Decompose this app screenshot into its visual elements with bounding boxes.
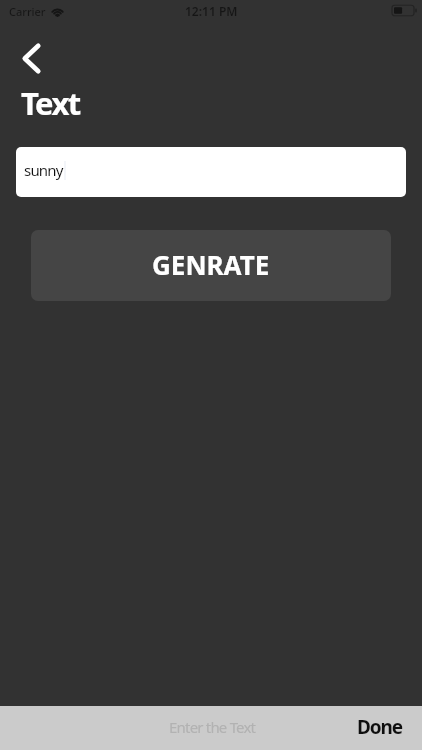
button[interactable]: GENRATE	[31, 230, 391, 301]
button[interactable]: Done	[351, 706, 409, 750]
staticText: Done	[357, 714, 403, 738]
button[interactable]: Back	[9, 35, 53, 81]
staticText: 12:11 PM	[185, 3, 238, 19]
staticText: Text	[21, 82, 80, 124]
staticText: GENRATE	[152, 247, 270, 282]
staticText: sunny	[24, 160, 63, 180]
button[interactable]: sunny	[16, 147, 406, 197]
staticText: Enter the Text	[169, 717, 256, 737]
staticText: Carrier	[9, 4, 46, 19]
